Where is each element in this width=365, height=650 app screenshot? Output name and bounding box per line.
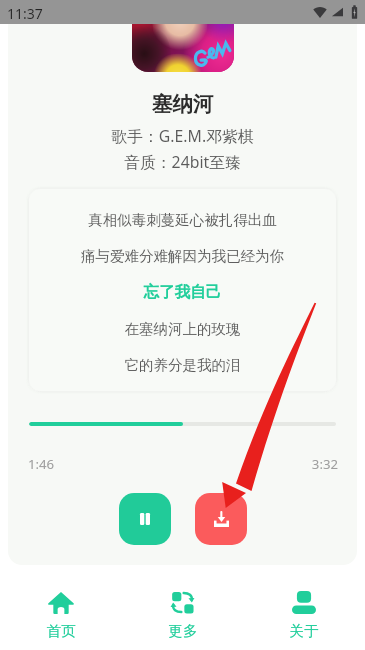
button[interactable]: Download (195, 493, 247, 545)
staticText: 音质：24bit至臻 (0, 151, 365, 173)
staticText: 1:46 (28, 455, 55, 473)
staticText: 它的养分是我的泪 (29, 356, 336, 374)
staticText: 首页 (0, 622, 122, 640)
button[interactable]: 更多 (122, 565, 244, 650)
staticText: 塞纳河 (0, 91, 365, 117)
button[interactable]: 首页 (0, 565, 122, 650)
staticText: 在塞纳河上的玫瑰 (29, 320, 336, 338)
button[interactable]: Pause (119, 493, 171, 545)
staticText: 忘了我自己 (29, 282, 336, 302)
staticText: 3:32 (29, 455, 338, 473)
staticText: 关于 (243, 622, 365, 640)
staticText: 11:37 (7, 4, 43, 23)
staticText: 痛与爱难分难解因为我已经为你 (29, 247, 336, 265)
button[interactable]: 关于 (243, 565, 365, 650)
staticText: 真相似毒刺蔓延心被扎得出血 (29, 211, 336, 229)
button[interactable]: Seek (29, 422, 336, 426)
staticText: 歌手：G.E.M.邓紫棋 (0, 125, 365, 147)
staticText: 更多 (122, 622, 244, 640)
